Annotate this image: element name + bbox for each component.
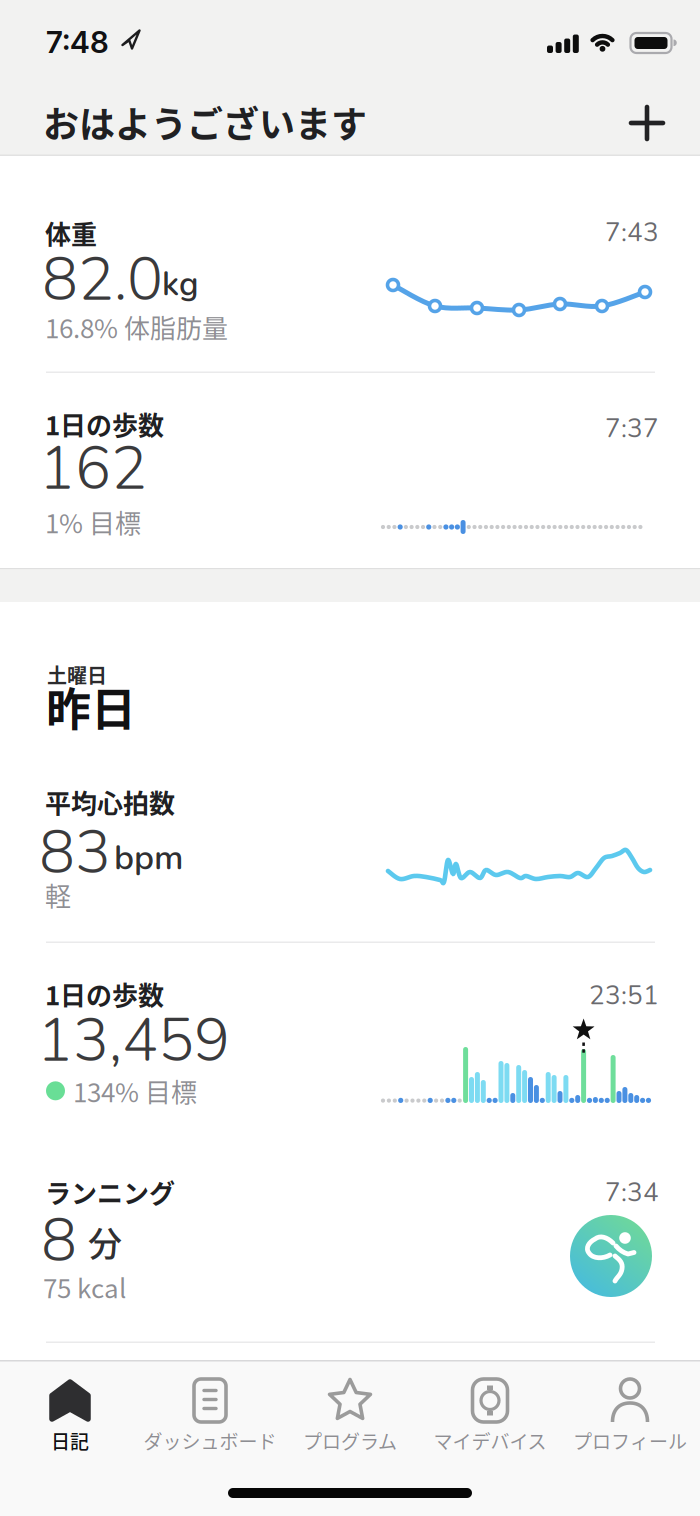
staticText: 1日の歩数 [45, 975, 164, 1013]
staticText: 7:48 [46, 24, 109, 60]
staticText: 8 [41, 1200, 77, 1282]
staticText: 平均心拍数 [45, 783, 175, 821]
staticText: 23:51 [589, 978, 659, 1013]
staticText: 162 [39, 428, 147, 510]
button[interactable]: ダッシュボード [140, 1366, 280, 1466]
staticText: 82.0 [42, 239, 163, 321]
staticText: 75 kcal [43, 1268, 126, 1306]
button[interactable]: プログラム [280, 1366, 420, 1466]
staticText: プロフィール [573, 1427, 687, 1454]
staticText: マイデバイス [433, 1427, 546, 1454]
staticText: 1日の歩数 [45, 405, 164, 443]
staticText: 16.8% 体脂肪量 [45, 308, 228, 346]
staticText: 土曜日 [47, 660, 107, 689]
button[interactable]: 平均心拍数 [0, 770, 700, 943]
staticText: bpm [114, 835, 183, 881]
button[interactable]: マイデバイス [420, 1366, 560, 1466]
button[interactable]: ランニング [0, 1160, 700, 1343]
staticText: 7:43 [605, 215, 659, 250]
staticText: 日記 [51, 1427, 89, 1454]
button[interactable]: 体重 [0, 156, 700, 373]
button[interactable]: 追加 [619, 95, 675, 151]
staticText: おはようございます [43, 96, 367, 148]
staticText: 1% 目標 [45, 503, 141, 541]
button[interactable]: 1日の歩数 [0, 373, 700, 568]
staticText: 83 [39, 812, 111, 894]
button[interactable]: 1日の歩数 [0, 943, 700, 1160]
staticText: 体重 [45, 214, 97, 252]
staticText: プログラム [303, 1427, 397, 1454]
button[interactable]: 日記 [0, 1366, 140, 1466]
staticText: 7:34 [605, 1175, 659, 1210]
staticText: 7:37 [605, 411, 659, 446]
staticText: 軽 [45, 876, 71, 914]
staticText: 昨日 [46, 674, 136, 739]
staticText: 134% 目標 [73, 1072, 197, 1110]
staticText: ランニング [45, 1173, 175, 1211]
staticText: kg [162, 262, 199, 307]
staticText: ダッシュボード [143, 1427, 276, 1454]
button[interactable]: プロフィール [560, 1366, 700, 1466]
staticText: 分 [88, 1217, 122, 1266]
staticText: 13,459 [37, 1000, 230, 1082]
